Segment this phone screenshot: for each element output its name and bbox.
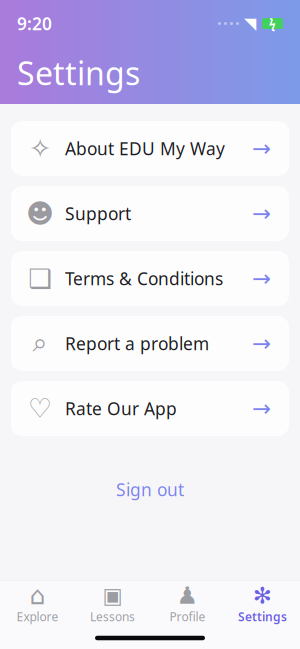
staticText: About EDU My Way — [65, 137, 225, 160]
staticText: ☻ — [26, 198, 54, 229]
staticText: Rate Our App — [65, 397, 177, 420]
staticText: ϟ — [269, 15, 276, 31]
staticText: ❏ — [28, 263, 52, 294]
staticText: → — [252, 266, 271, 291]
staticText: ⌂ — [29, 581, 45, 610]
button[interactable]: ⌂ — [0, 577, 75, 630]
button[interactable]: ☻ — [11, 186, 289, 241]
button[interactable]: ♟ — [150, 577, 225, 630]
button[interactable]: ♡ — [11, 381, 289, 436]
staticText: ✧ — [29, 133, 51, 164]
staticText: Explore — [16, 608, 58, 624]
staticText: Profile — [169, 608, 205, 624]
button[interactable]: ✻ — [225, 577, 300, 630]
staticText: Report a problem — [65, 332, 209, 355]
staticText: Sign out — [116, 478, 184, 501]
staticText: → — [252, 331, 271, 356]
staticText: → — [252, 201, 271, 226]
staticText: ▣ — [102, 583, 122, 608]
button[interactable]: ✧ — [11, 121, 289, 176]
staticText: ⌕ — [32, 330, 47, 356]
button[interactable]: ⌕ — [11, 316, 289, 371]
staticText: Terms & Conditions — [65, 267, 223, 290]
button[interactable]: ❏ — [11, 251, 289, 306]
staticText: ◥ — [244, 14, 256, 33]
staticText: ♡ — [28, 393, 52, 424]
staticText: Settings — [238, 608, 287, 624]
staticText: → — [252, 136, 271, 161]
staticText: Settings — [17, 51, 140, 94]
staticText: Lessons — [90, 608, 135, 624]
staticText: Support — [65, 202, 131, 225]
button[interactable]: Sign out — [92, 468, 208, 511]
button[interactable]: ▣ — [75, 577, 150, 630]
staticText: → — [252, 396, 271, 421]
staticText: 9:20 — [17, 12, 52, 35]
staticText: ✻ — [253, 583, 272, 608]
staticText: ♟ — [176, 582, 198, 609]
